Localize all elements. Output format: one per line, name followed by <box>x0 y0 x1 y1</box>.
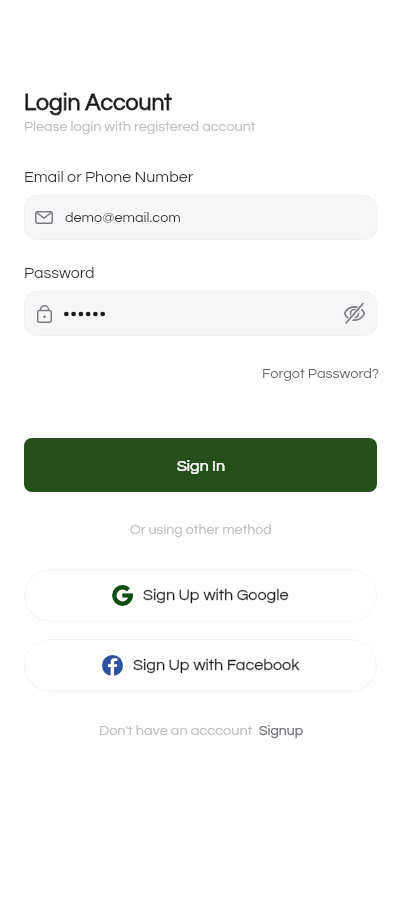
staticText: Sign In <box>177 458 225 474</box>
staticText: Don't have an acccount <box>99 723 253 738</box>
staticText: Login Account <box>24 91 172 115</box>
button[interactable]: Signup <box>259 724 303 738</box>
button[interactable]: Show password <box>344 304 365 323</box>
staticText: Login Account <box>24 91 172 115</box>
staticText: Sign Up with Facebook <box>133 657 300 674</box>
staticText: Sign In <box>177 458 225 474</box>
staticText: Signup <box>259 724 303 738</box>
staticText: Sign Up with Google <box>143 587 289 604</box>
staticText: Forgot Password? <box>262 366 380 381</box>
staticText: Email or Phone Number <box>24 169 194 185</box>
staticText: Please login with registered account <box>24 119 256 134</box>
button[interactable]: Forgot Password? <box>258 362 384 385</box>
staticText: Sign Up with Google <box>143 587 289 604</box>
staticText: demo@email.com <box>65 210 181 225</box>
staticText: Signup <box>259 724 303 738</box>
button[interactable]: demo@email.com <box>24 195 377 240</box>
button[interactable]: Sign Up with Google <box>24 569 377 622</box>
staticText: Sign Up with Facebook <box>133 657 300 674</box>
button[interactable]: Show password <box>24 291 377 336</box>
button[interactable]: Sign Up with Facebook <box>24 639 377 692</box>
button[interactable]: Sign In <box>24 438 377 492</box>
staticText: Or using other method <box>130 522 272 537</box>
staticText: Password <box>24 265 95 281</box>
